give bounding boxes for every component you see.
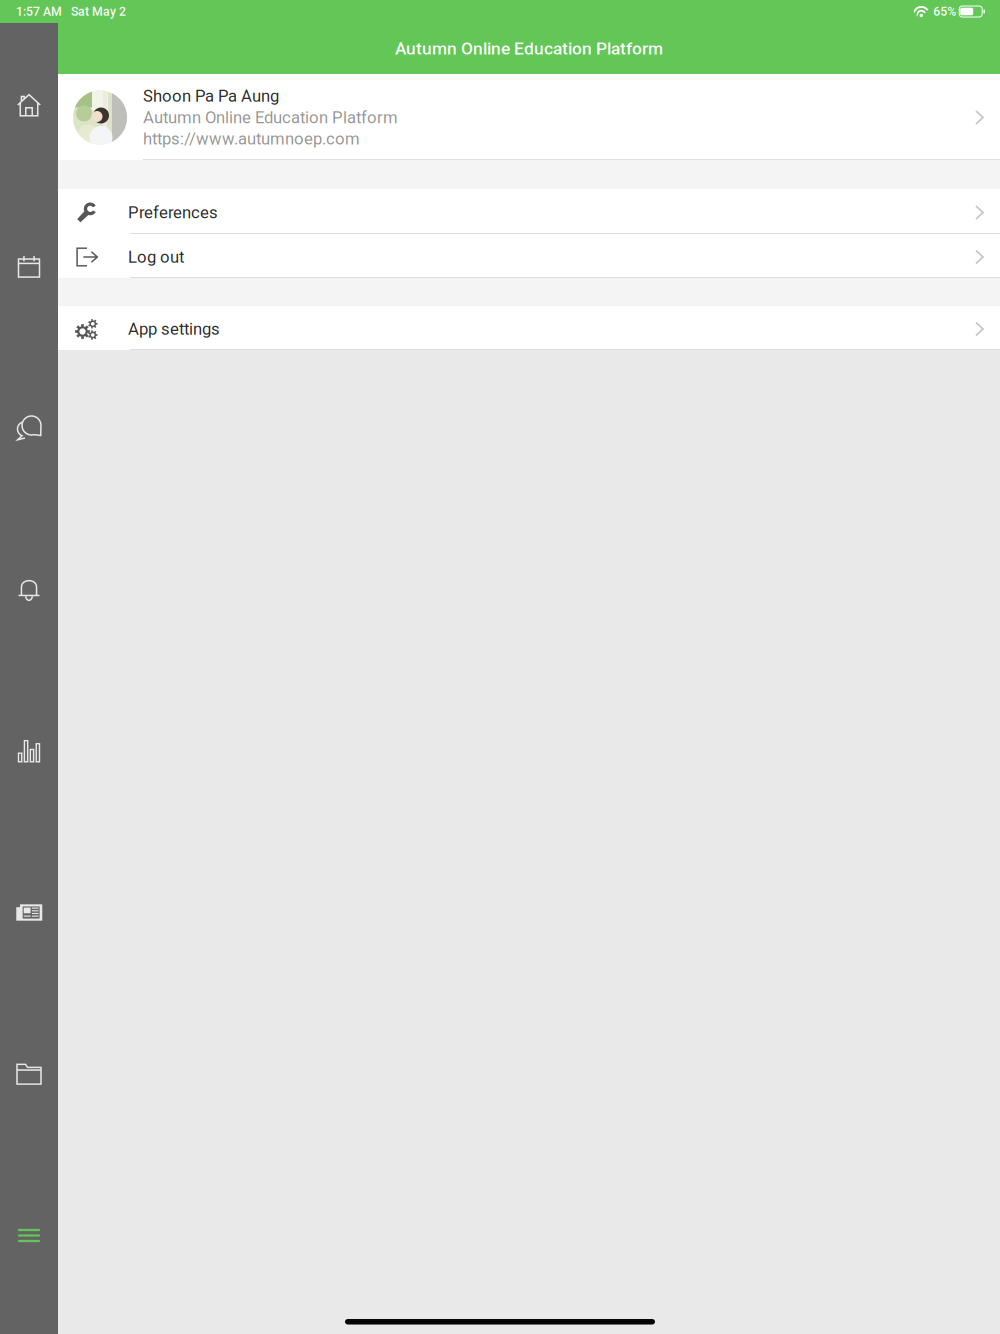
button[interactable]: App settings — [58, 306, 1000, 349]
button[interactable]: Reports — [0, 733, 58, 769]
staticText: Autumn Online Education Platform — [395, 38, 663, 59]
staticText: Sat May 2 — [71, 4, 126, 19]
staticText: 1:57 AM — [16, 4, 62, 19]
button[interactable]: Calendar — [0, 248, 58, 284]
staticText: Shoon Pa Pa Aung — [143, 86, 279, 106]
button[interactable]: Preferences — [58, 189, 1000, 233]
staticText: Autumn Online Education Platform — [143, 108, 398, 127]
button[interactable]: Files — [0, 1056, 58, 1092]
staticText: https://www.autumnoep.com — [143, 129, 360, 149]
button[interactable]: News — [0, 894, 58, 930]
button[interactable]: Messages — [0, 410, 58, 446]
staticText: Log out — [128, 247, 184, 267]
button[interactable]: Menu — [0, 1217, 58, 1253]
staticText: 65% — [933, 4, 956, 19]
button[interactable]: Shoon Pa Pa Aung — [58, 74, 1000, 159]
button[interactable]: Home — [0, 87, 58, 123]
button[interactable]: Notifications — [0, 571, 58, 607]
staticText: App settings — [128, 319, 220, 339]
staticText: Preferences — [128, 203, 218, 222]
button[interactable]: Log out — [58, 234, 1000, 277]
